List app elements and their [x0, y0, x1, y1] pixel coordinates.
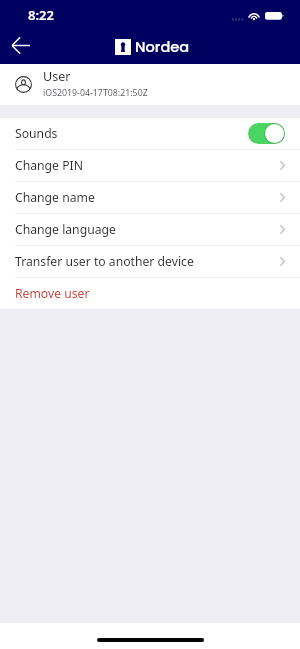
button[interactable]: Back	[7, 31, 35, 59]
button[interactable]: User	[0, 64, 300, 105]
staticText: User	[43, 68, 71, 85]
button[interactable]: Transfer user to another device	[0, 246, 300, 277]
staticText: Remove user	[15, 285, 90, 302]
staticText: Nordea	[135, 37, 190, 57]
button[interactable]: Change PIN	[0, 150, 300, 181]
staticText: 8:22	[28, 6, 54, 24]
staticText: Change language	[15, 221, 116, 238]
button[interactable]: Sounds	[0, 118, 300, 149]
staticText: Change name	[15, 189, 95, 206]
button[interactable]: Change name	[0, 182, 300, 213]
staticText: Sounds	[15, 125, 58, 142]
staticText: Transfer user to another device	[15, 253, 194, 270]
button[interactable]: Sounds on	[248, 123, 285, 144]
button[interactable]: Change language	[0, 214, 300, 245]
button[interactable]: Remove user	[0, 278, 300, 309]
staticText: Change PIN	[15, 157, 83, 174]
staticText: iOS2019-04-17T08:21:50Z	[43, 87, 148, 99]
